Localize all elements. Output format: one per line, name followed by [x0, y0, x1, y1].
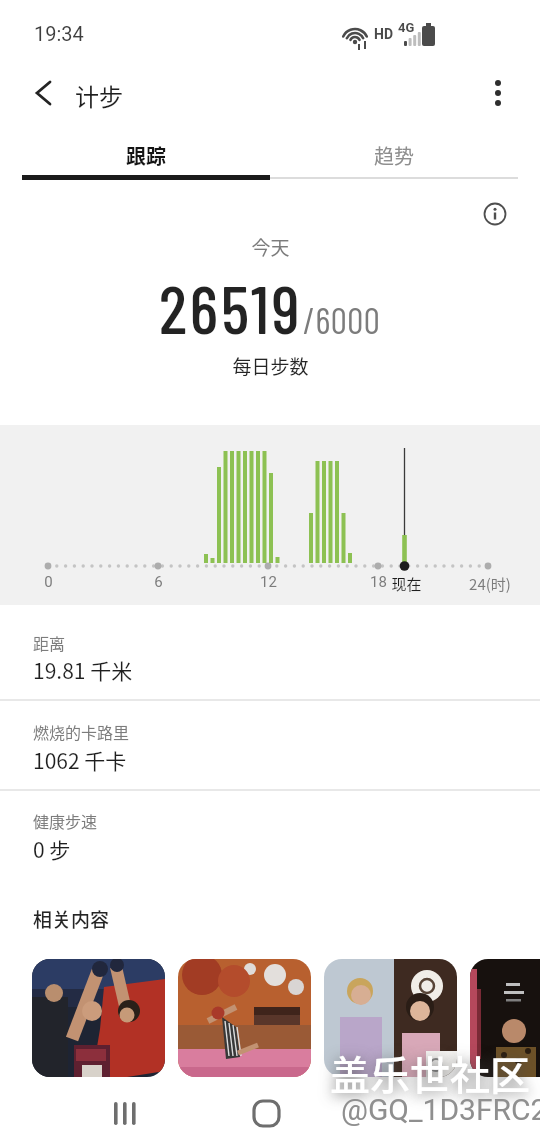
staticText: 19:34: [34, 22, 84, 45]
staticText: 相关内容: [33, 905, 110, 933]
staticText: 26519: [159, 267, 303, 337]
staticText: 6: [154, 573, 163, 591]
staticText: 0: [44, 573, 53, 591]
button[interactable]: [102, 1092, 148, 1134]
button[interactable]: [0, 791, 540, 880]
button[interactable]: [32, 959, 165, 1077]
staticText: 0 步: [33, 834, 71, 864]
button[interactable]: 跟踪: [22, 135, 270, 175]
staticText: 今天: [251, 233, 290, 261]
staticText: @GQ_1D3FRC2: [341, 1092, 540, 1127]
staticText: 燃烧的卡路里: [33, 720, 130, 743]
staticText: 19.81 千米: [33, 655, 133, 685]
staticText: 趋势: [374, 141, 414, 170]
staticText: /6000: [303, 298, 381, 341]
button[interactable]: [0, 701, 540, 789]
button[interactable]: [470, 959, 540, 1077]
staticText: HD: [374, 26, 394, 42]
staticText: 每日步数: [232, 352, 309, 380]
button[interactable]: [0, 605, 540, 699]
staticText: 现在: [391, 573, 422, 595]
button[interactable]: [178, 959, 311, 1077]
button[interactable]: [478, 73, 518, 113]
staticText: 4G: [398, 20, 415, 35]
staticText: 计步: [75, 78, 123, 113]
staticText: 距离: [33, 631, 66, 654]
staticText: 12: [260, 573, 277, 591]
button[interactable]: [244, 1092, 290, 1134]
staticText: 跟踪: [126, 141, 166, 170]
staticText: 健康步速: [33, 809, 98, 832]
button[interactable]: [24, 73, 64, 113]
button[interactable]: [478, 197, 512, 231]
button[interactable]: 趋势: [270, 135, 518, 175]
staticText: 24(时): [469, 573, 511, 595]
staticText: 盖乐世社区: [330, 1044, 530, 1102]
staticText: 18: [370, 573, 387, 591]
button[interactable]: [324, 959, 457, 1077]
staticText: 1062 千卡: [33, 745, 127, 775]
